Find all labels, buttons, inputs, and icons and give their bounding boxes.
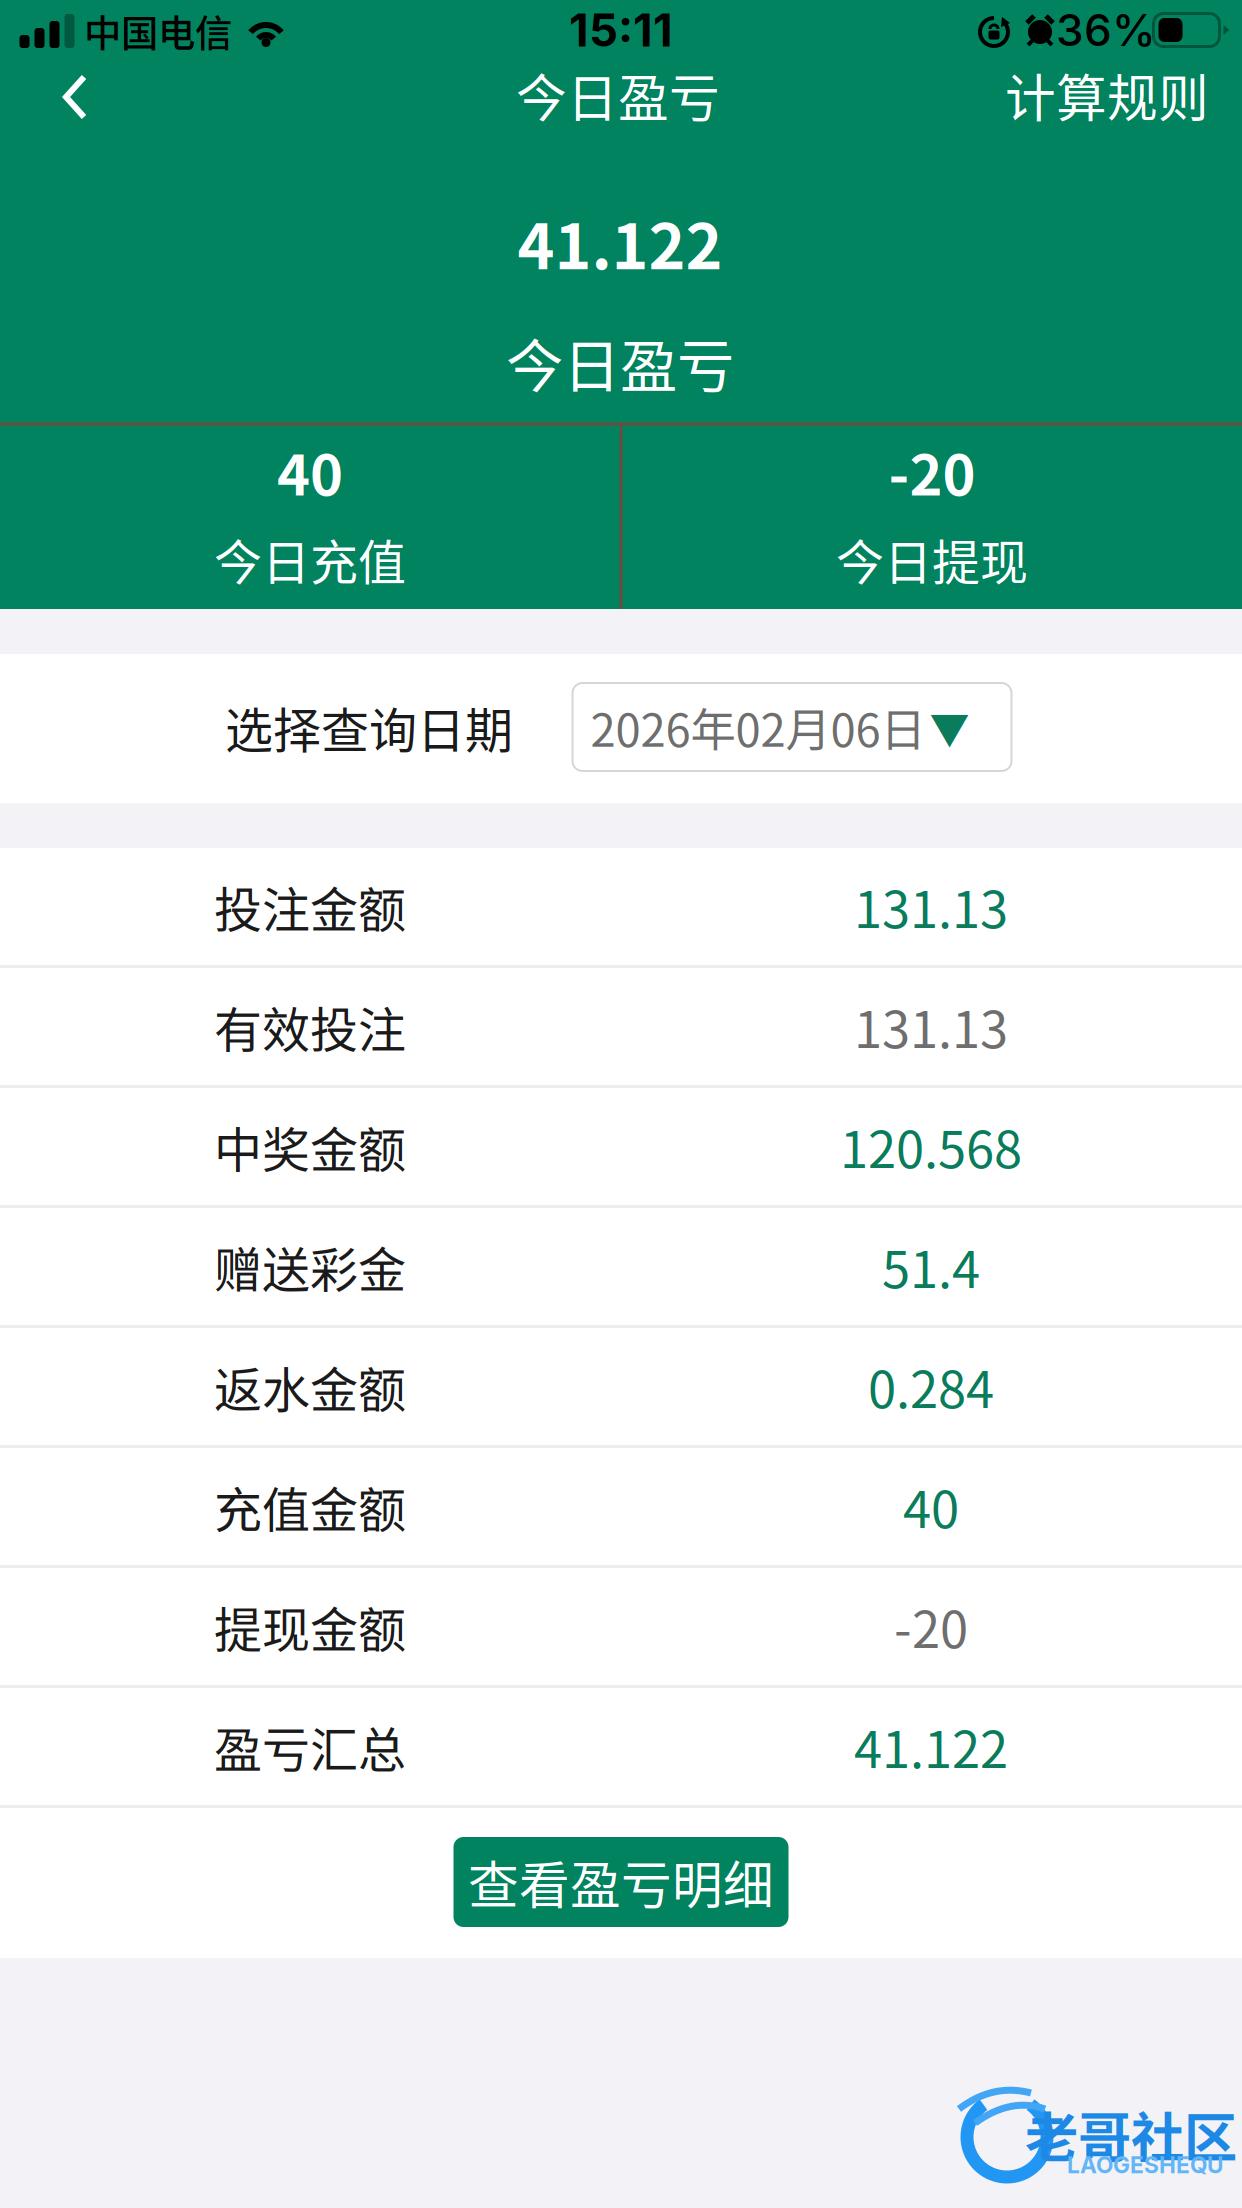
staticText: 36%: [1056, 3, 1156, 57]
staticText: 今日盈亏: [516, 58, 720, 132]
staticText: 返水金额: [214, 1352, 406, 1421]
staticText: 今日充值: [214, 524, 406, 594]
button[interactable]: 计算规则: [971, 56, 1242, 134]
staticText: 计算规则: [1005, 58, 1209, 132]
staticText: 2026年02月06日: [590, 694, 925, 760]
button[interactable]: Back: [20, 58, 130, 136]
staticText: 131.13: [854, 869, 1008, 943]
staticText: 40: [903, 1469, 959, 1543]
staticText: 中奖金额: [214, 1112, 406, 1181]
staticText: 51.4: [882, 1229, 980, 1303]
staticText: 120.568: [840, 1109, 1022, 1183]
button[interactable]: 查看盈亏明细: [453, 1837, 788, 1927]
staticText: 投注金额: [214, 872, 406, 941]
button[interactable]: 2026年02月06日: [572, 683, 1011, 771]
staticText: 充值金额: [214, 1472, 406, 1541]
staticText: -20: [894, 1589, 968, 1663]
staticText: 0.284: [868, 1349, 994, 1423]
staticText: 选择查询日期: [225, 692, 513, 762]
staticText: 盈亏汇总: [214, 1712, 406, 1781]
staticText: LAOGESHEQU: [1067, 2151, 1223, 2179]
staticText: 131.13: [854, 989, 1008, 1063]
staticText: 40: [277, 430, 343, 512]
staticText: 查看盈亏明细: [468, 1845, 774, 1919]
staticText: 赠送彩金: [214, 1232, 406, 1301]
staticText: 今日提现: [836, 524, 1028, 594]
staticText: ▼: [929, 698, 969, 756]
staticText: 有效投注: [214, 992, 406, 1061]
staticText: 老哥社区: [1025, 2095, 1237, 2173]
staticText: 41.122: [517, 197, 722, 287]
staticText: -20: [888, 430, 975, 512]
staticText: 15:11: [569, 3, 673, 57]
staticText: 中国电信: [84, 4, 232, 58]
staticText: 今日盈亏: [506, 320, 734, 403]
staticText: 41.122: [854, 1709, 1008, 1783]
staticText: 提现金额: [214, 1592, 406, 1661]
